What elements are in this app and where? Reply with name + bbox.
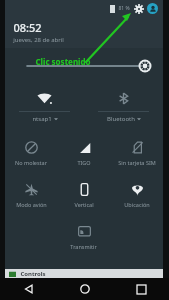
button[interactable]: Sin tarjeta SIM: [110, 132, 163, 174]
staticText: Bluetooth: [107, 115, 135, 123]
button[interactable]: Settings: [133, 3, 144, 14]
button[interactable]: Ubicación: [110, 174, 163, 216]
button[interactable]: Modo avión: [5, 174, 57, 216]
button[interactable]: Home: [57, 278, 113, 300]
staticText: 08:52: [13, 20, 42, 35]
staticText: TIGO: [77, 159, 91, 166]
button[interactable]: Back: [0, 278, 57, 300]
staticText: Transmitir: [70, 243, 97, 250]
staticText: Vertical: [74, 201, 94, 208]
staticText: Ubicación: [124, 201, 150, 208]
button[interactable]: [27, 55, 153, 77]
staticText: 81 %: [118, 5, 130, 12]
button[interactable]: No molestar: [5, 132, 57, 174]
button[interactable]: Vertical: [57, 174, 110, 216]
button[interactable]: ntsap1: [5, 86, 84, 126]
button[interactable]: TIGO: [57, 132, 110, 174]
staticText: Sin tarjeta SIM: [118, 159, 156, 166]
button[interactable]: Bluetooth: [84, 86, 163, 126]
staticText: jueves, 28 de abril: [13, 36, 64, 44]
button[interactable]: User profile: [147, 3, 158, 14]
staticText: ntsap1: [32, 115, 52, 123]
staticText: Controls: [20, 270, 46, 278]
staticText: Modo avión: [16, 201, 47, 208]
button[interactable]: Controls: [5, 269, 163, 278]
staticText: Clic sostenido: [35, 56, 91, 67]
staticText: No molestar: [15, 159, 47, 166]
button[interactable]: Transmitir: [57, 216, 110, 258]
button[interactable]: Recent apps: [113, 278, 169, 300]
